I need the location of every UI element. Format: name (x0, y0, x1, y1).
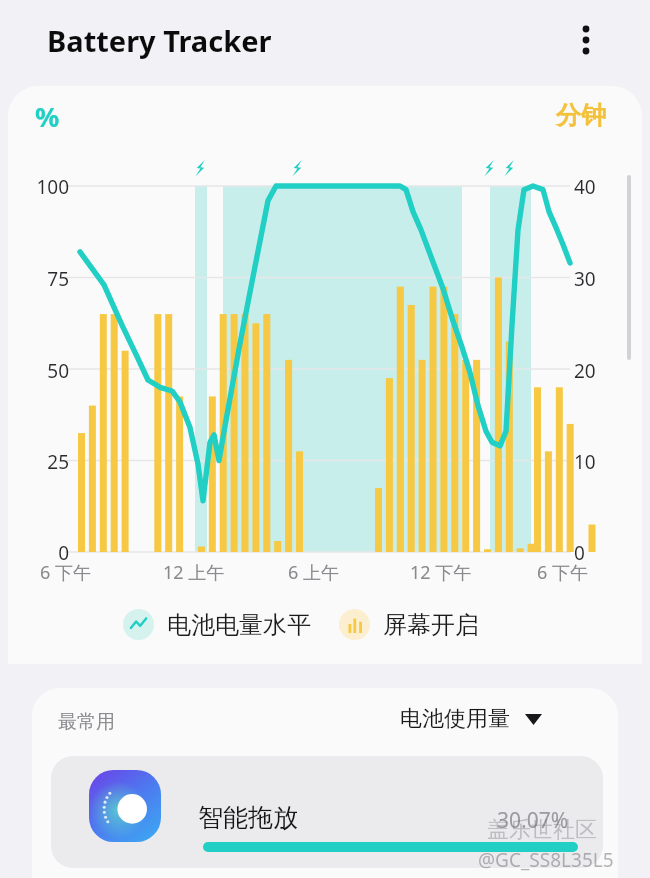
staticText: 分钟 (556, 100, 606, 131)
staticText: 30.07% (497, 806, 569, 835)
staticText: 20 (574, 358, 618, 384)
button[interactable]: 屏幕开启 (336, 606, 482, 643)
staticText: 智能拖放 (198, 802, 298, 833)
staticText: 50 (29, 358, 69, 384)
staticText: Battery Tracker (47, 21, 272, 60)
staticText: 0 (29, 540, 69, 566)
staticText: 40 (574, 174, 618, 200)
staticText: 75 (29, 266, 69, 292)
staticText: % (35, 98, 60, 135)
staticText: 12 上午 (163, 560, 225, 585)
button[interactable]: 电池电量水平 (120, 606, 314, 643)
staticText: 电池电量水平 (167, 610, 311, 640)
button[interactable]: More options (562, 16, 610, 64)
staticText: 屏幕开启 (383, 610, 479, 640)
staticText: 100 (29, 174, 69, 200)
staticText: 0 (574, 540, 618, 566)
staticText: 电池使用量 (400, 705, 510, 733)
button[interactable]: 智能拖放 (51, 756, 603, 868)
staticText: @GC_SS8L35L5 (478, 847, 614, 873)
staticText: 10 (574, 449, 618, 475)
staticText: 盖乐世社区 (487, 816, 597, 844)
staticText: 30 (574, 266, 618, 292)
staticText: 6 下午 (537, 560, 588, 585)
staticText: 6 上午 (288, 560, 339, 585)
staticText: 12 下午 (410, 560, 472, 585)
staticText: 25 (29, 449, 69, 475)
button[interactable]: 电池使用量 (394, 700, 548, 738)
staticText: 最常用 (58, 710, 115, 734)
staticText: 6 下午 (40, 560, 91, 585)
